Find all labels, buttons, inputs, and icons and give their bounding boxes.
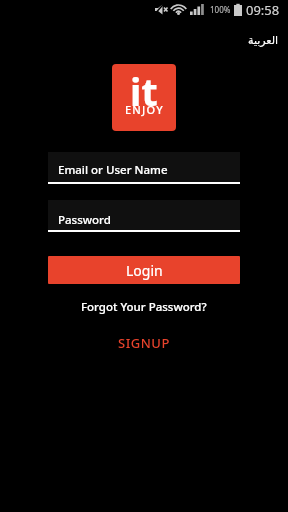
staticText: Login — [126, 261, 163, 280]
staticText: 09:58 — [246, 1, 280, 19]
staticText: Email or User Name — [58, 162, 168, 178]
button[interactable]: SIGNUP — [114, 330, 174, 356]
staticText: it — [130, 65, 158, 117]
button[interactable]: Email or User Name — [48, 152, 240, 184]
button[interactable]: Password — [48, 200, 240, 232]
staticText: Password — [58, 212, 111, 228]
staticText: Forgot Your Password? — [81, 299, 207, 315]
staticText: SIGNUP — [118, 334, 170, 352]
button[interactable]: Login — [48, 256, 240, 284]
staticText: ENJOY — [125, 102, 164, 117]
staticText: 100% — [210, 4, 231, 15]
staticText: العربية — [248, 34, 279, 47]
button[interactable]: العربية — [243, 31, 284, 50]
button[interactable]: Forgot Your Password? — [77, 295, 211, 319]
